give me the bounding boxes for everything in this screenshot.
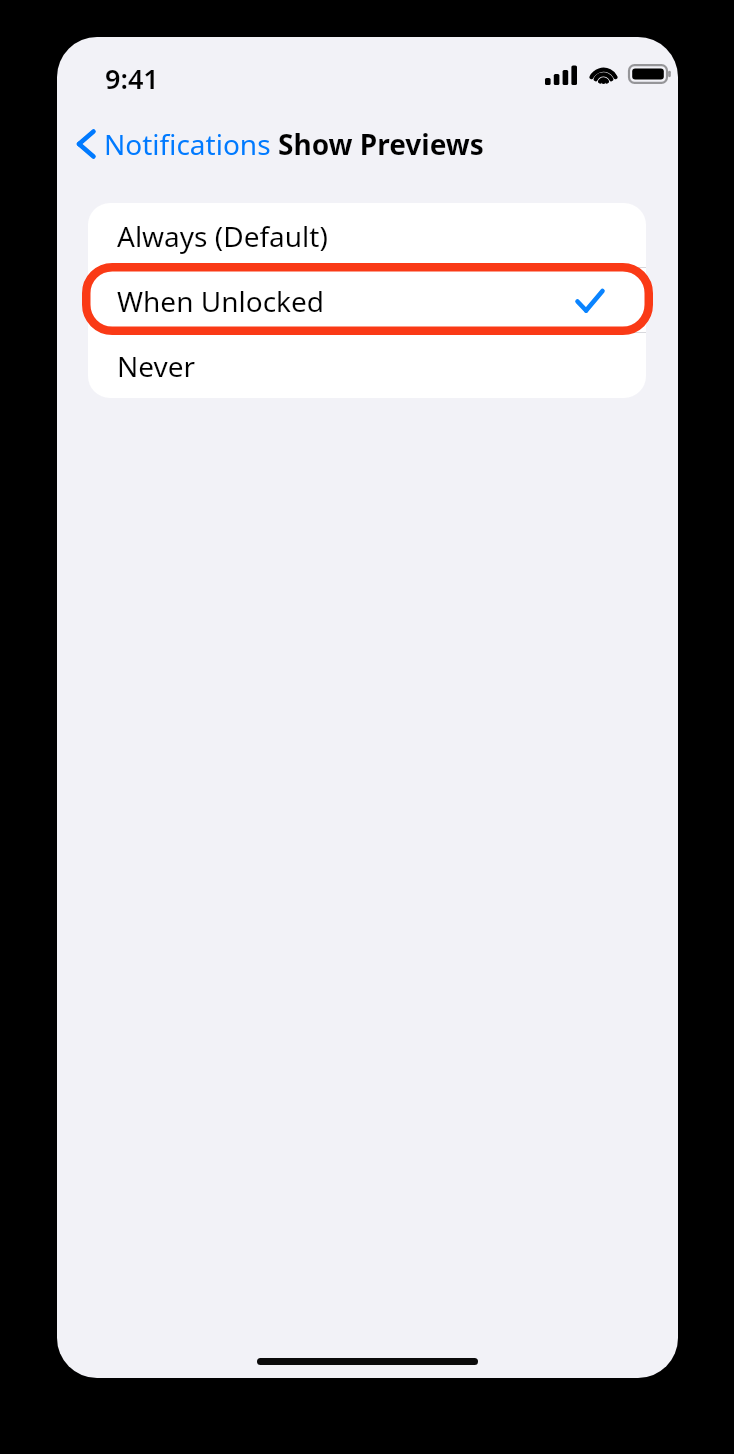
button[interactable]: Notifications bbox=[71, 119, 277, 169]
button[interactable]: Always (Default) bbox=[88, 203, 646, 268]
staticText: Never bbox=[117, 347, 196, 385]
staticText: Show Previews bbox=[278, 125, 484, 163]
staticText: 9:41 bbox=[105, 60, 159, 97]
staticText: Notifications bbox=[104, 125, 271, 163]
button[interactable]: Never bbox=[88, 333, 646, 398]
staticText: When Unlocked bbox=[117, 282, 325, 320]
staticText: Always (Default) bbox=[117, 217, 328, 255]
other: Selected bbox=[576, 289, 604, 313]
button[interactable]: When Unlocked bbox=[88, 268, 646, 333]
